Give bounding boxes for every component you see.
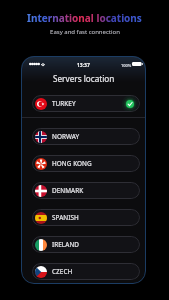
button[interactable]: TURKEY: [32, 95, 140, 112]
staticText: NORWAY: [52, 132, 80, 141]
button[interactable]: HONG KONG: [32, 155, 140, 172]
staticText: DENMARK: [52, 186, 84, 195]
staticText: Easy and fast connection: [50, 28, 120, 36]
button[interactable]: IRELAND: [32, 236, 140, 253]
button[interactable]: DENMARK: [32, 182, 140, 199]
staticText: International locations: [27, 11, 142, 25]
staticText: HONG KONG: [52, 159, 92, 168]
staticText: IRELAND: [52, 240, 79, 249]
staticText: TURKEY: [52, 99, 76, 108]
staticText: 100%: [121, 63, 132, 68]
button[interactable]: SPANISH: [32, 209, 140, 226]
staticText: SPANISH: [52, 213, 79, 222]
staticText: Servers location: [53, 73, 115, 84]
button[interactable]: CZECH: [32, 263, 140, 280]
staticText: CZECH: [52, 267, 73, 276]
button[interactable]: NORWAY: [32, 128, 140, 145]
staticText: 13:37: [77, 62, 90, 69]
